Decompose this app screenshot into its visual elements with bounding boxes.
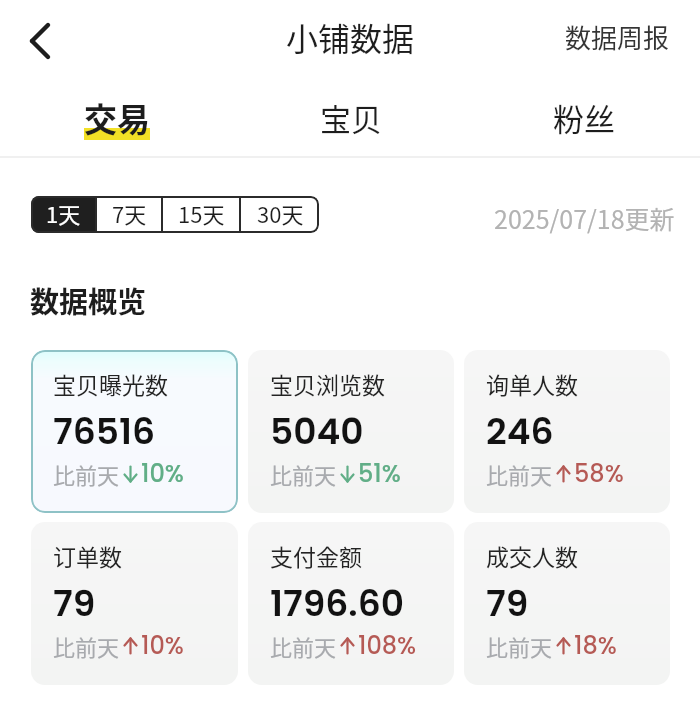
staticText: 7天 <box>112 197 147 229</box>
staticText: 比前天 <box>53 630 120 662</box>
staticText: 数据概览 <box>30 279 147 321</box>
staticText: 2025/07/18更新 <box>494 200 675 236</box>
staticText: 10% <box>141 457 184 491</box>
staticText: 比前天 <box>486 458 553 490</box>
staticText: 5040 <box>270 406 364 456</box>
button[interactable]: 30天 <box>241 196 319 233</box>
staticText: 76516 <box>53 406 156 456</box>
button[interactable]: 订单数 <box>31 522 238 685</box>
staticText: 订单数 <box>53 539 122 572</box>
staticText: 15天 <box>178 197 225 229</box>
staticText: 246 <box>486 406 554 456</box>
button[interactable]: Back <box>10 14 64 68</box>
staticText: 30天 <box>257 197 304 229</box>
staticText: 58% <box>574 457 624 491</box>
button[interactable]: 宝贝浏览数 <box>248 350 454 513</box>
button[interactable]: 成交人数 <box>464 522 670 685</box>
button[interactable]: 宝贝 <box>234 79 467 156</box>
button[interactable]: 1天 <box>31 196 95 233</box>
staticText: 成交人数 <box>486 539 578 572</box>
staticText: 小铺数据 <box>286 14 415 60</box>
staticText: 宝贝曝光数 <box>53 367 168 400</box>
button[interactable]: 15天 <box>163 196 239 233</box>
staticText: 宝贝浏览数 <box>270 367 385 400</box>
button[interactable]: 数据周报 <box>565 18 670 56</box>
staticText: 10% <box>141 629 184 663</box>
staticText: 支付金额 <box>270 539 362 572</box>
button[interactable]: 粉丝 <box>467 79 700 156</box>
staticText: 79 <box>53 578 96 628</box>
button[interactable]: 7天 <box>97 196 161 233</box>
staticText: 1796.60 <box>270 578 404 628</box>
staticText: 79 <box>486 578 529 628</box>
button[interactable]: 支付金额 <box>248 522 454 685</box>
staticText: 比前天 <box>270 630 337 662</box>
staticText: 交易 <box>84 94 150 142</box>
staticText: 宝贝 <box>320 95 382 140</box>
staticText: 比前天 <box>486 630 553 662</box>
button[interactable]: 宝贝曝光数 <box>31 350 238 513</box>
staticText: 询单人数 <box>486 367 578 400</box>
staticText: 108% <box>358 629 417 663</box>
staticText: 粉丝 <box>553 95 615 140</box>
button[interactable]: 交易 <box>0 79 234 156</box>
staticText: 18% <box>574 629 617 663</box>
staticText: 1天 <box>46 197 81 229</box>
button[interactable]: 询单人数 <box>464 350 670 513</box>
staticText: 51% <box>358 457 401 491</box>
staticText: 比前天 <box>270 458 337 490</box>
staticText: 比前天 <box>53 458 120 490</box>
